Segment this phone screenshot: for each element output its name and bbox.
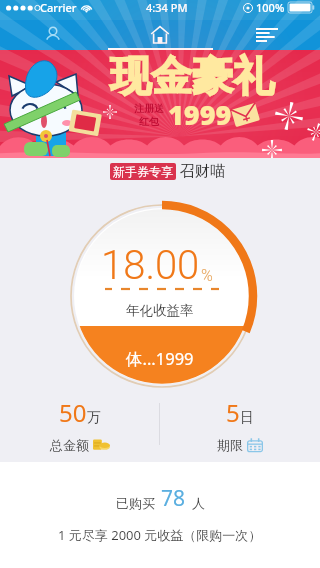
staticText: 5	[226, 396, 240, 429]
staticText: 现金豪礼	[110, 51, 274, 103]
staticText: 4:34 PM	[146, 0, 188, 15]
staticText: 78	[161, 484, 186, 513]
button[interactable]: Account	[0, 20, 106, 50]
staticText: 日	[240, 409, 254, 427]
staticText: 1 元尽享 2000 元收益（限购一次）	[58, 526, 262, 544]
staticText: 年化收益率	[126, 302, 194, 319]
staticText: 已购买	[116, 495, 155, 511]
staticText: 红包	[139, 115, 159, 128]
staticText: 期限	[217, 437, 243, 453]
staticText: 人	[192, 495, 205, 511]
button[interactable]: 新手券专享	[0, 162, 320, 181]
staticText: 50	[59, 396, 87, 429]
staticText: 万	[87, 409, 101, 427]
staticText: 体...1999	[126, 347, 194, 370]
staticText: 18.00	[101, 242, 200, 289]
staticText: 总金额	[50, 437, 89, 453]
button[interactable]: Menu	[214, 20, 320, 50]
staticText: 新手券专享	[113, 164, 173, 179]
staticText: 1999	[168, 96, 232, 133]
staticText: 注册送	[134, 102, 164, 115]
button[interactable]: 现金豪礼	[0, 50, 320, 158]
staticText: 召财喵	[180, 162, 225, 181]
staticText: 100%	[256, 0, 285, 15]
staticText: %	[201, 266, 213, 285]
staticText: Carrier	[40, 0, 77, 15]
button[interactable]: Home	[106, 20, 214, 50]
